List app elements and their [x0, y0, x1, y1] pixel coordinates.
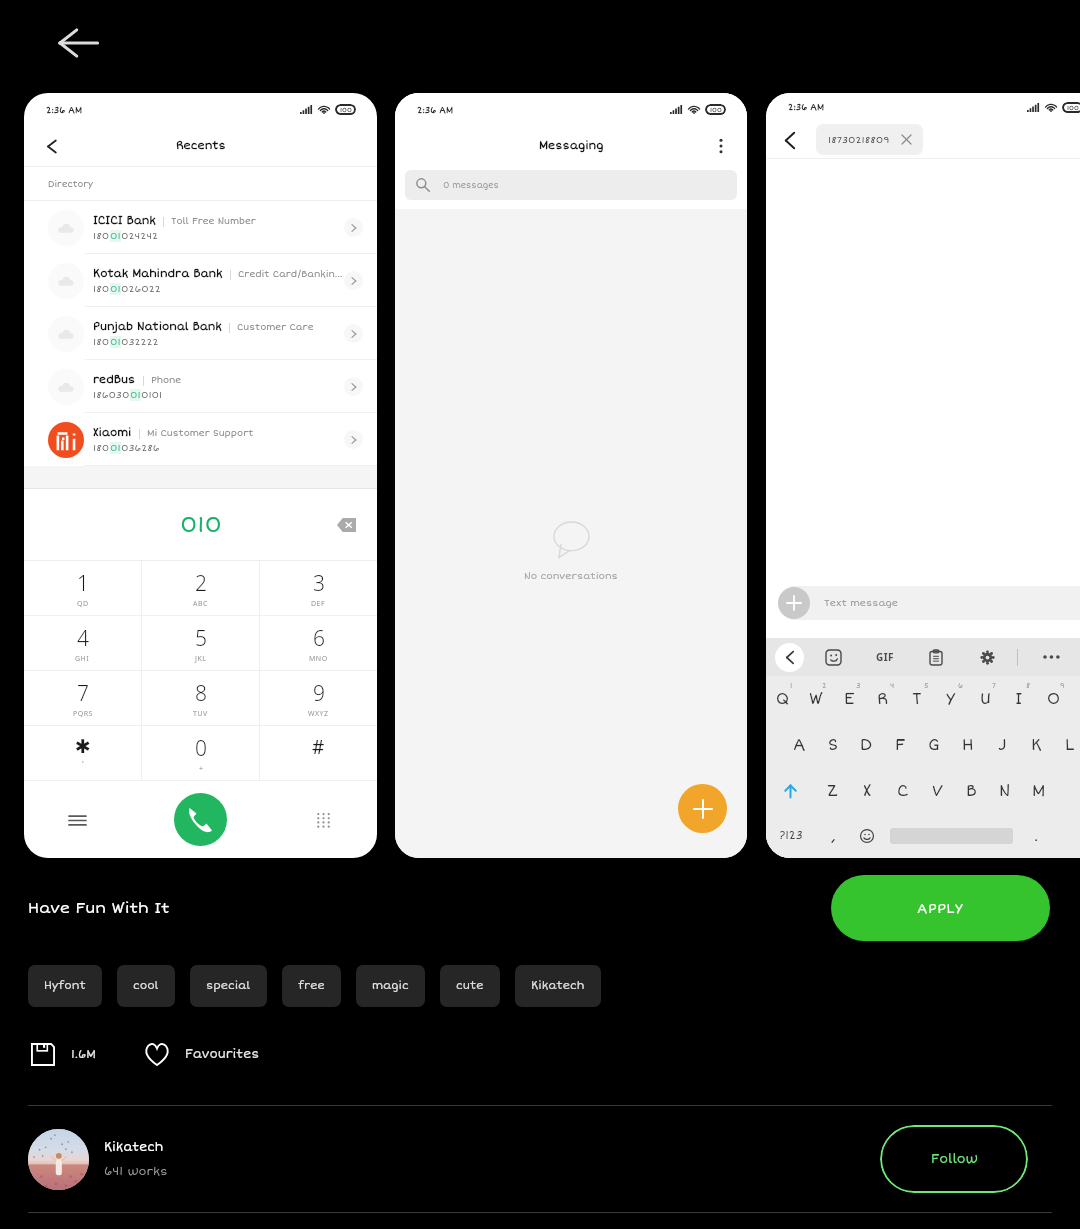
button[interactable]: ✱	[24, 726, 141, 781]
button[interactable]: ICICI Bank	[24, 201, 377, 254]
button[interactable]: New conversation	[678, 784, 727, 833]
staticText: Follow	[931, 1151, 978, 1167]
button[interactable]: special	[190, 965, 267, 1007]
button[interactable]: More	[1037, 644, 1063, 670]
button[interactable]: Settings	[974, 644, 1000, 670]
staticText: Z	[827, 781, 838, 801]
staticText: W	[809, 689, 823, 709]
button[interactable]: 0 messages	[405, 170, 737, 200]
button[interactable]: 6	[260, 616, 377, 671]
button[interactable]: U	[968, 676, 1002, 722]
button[interactable]: T	[900, 676, 934, 722]
button[interactable]: Add attachment	[778, 587, 810, 619]
staticText: Kikatech	[531, 979, 585, 993]
button[interactable]: Y	[934, 676, 968, 722]
button[interactable]: redBus	[24, 360, 377, 413]
button[interactable]: Kikatech	[515, 965, 601, 1007]
button[interactable]: S	[816, 722, 849, 768]
button[interactable]: APPLY	[831, 875, 1050, 941]
button[interactable]: 9	[260, 671, 377, 726]
staticText: 01	[130, 389, 141, 401]
button[interactable]: I	[1002, 676, 1036, 722]
button[interactable]: Xiaomi	[24, 413, 377, 466]
staticText: 01	[110, 442, 121, 454]
staticText: 026022	[121, 283, 161, 295]
button[interactable]: cool	[117, 965, 175, 1007]
staticText: 0	[195, 734, 207, 763]
button[interactable]: GIF	[870, 642, 900, 672]
button[interactable]: Favourites	[141, 1038, 173, 1070]
button[interactable]: M	[1022, 768, 1056, 814]
staticText: 100	[1067, 104, 1079, 112]
button[interactable]: G	[917, 722, 951, 768]
button[interactable]: Q	[766, 676, 799, 722]
button[interactable]: H	[951, 722, 985, 768]
button[interactable]: Shift	[766, 768, 815, 814]
button[interactable]: free	[282, 965, 341, 1007]
button[interactable]: Call	[174, 793, 227, 846]
button[interactable]: Comma	[816, 814, 850, 858]
staticText: 641 works	[104, 1164, 168, 1178]
staticText: cool	[133, 979, 159, 993]
button[interactable]: Back	[32, 126, 72, 166]
button[interactable]: Stickers	[820, 644, 846, 670]
button[interactable]: E	[832, 676, 866, 722]
button[interactable]: B	[954, 768, 988, 814]
button[interactable]: Keypad	[308, 805, 338, 835]
button[interactable]: Hyfont	[28, 965, 102, 1007]
button[interactable]: 2	[142, 561, 259, 616]
button[interactable]: 1	[24, 561, 141, 616]
staticText: 100	[340, 106, 352, 114]
button[interactable]: N	[988, 768, 1022, 814]
button[interactable]: #	[260, 726, 377, 781]
button[interactable]: K	[1019, 722, 1053, 768]
button[interactable]: More options	[705, 130, 737, 162]
button[interactable]: Z	[815, 768, 850, 814]
staticText: 1	[790, 681, 793, 690]
button[interactable]: W	[799, 676, 832, 722]
staticText: ICICI Bank	[93, 214, 156, 227]
button[interactable]: 18730218809	[816, 124, 923, 155]
button[interactable]: 8	[142, 671, 259, 726]
button[interactable]: Menu	[62, 805, 92, 835]
button[interactable]: Follow	[880, 1125, 1028, 1193]
button[interactable]: A	[783, 722, 816, 768]
button[interactable]: V	[920, 768, 954, 814]
staticText: T	[912, 689, 922, 709]
button[interactable]: 4	[24, 616, 141, 671]
button[interactable]: Punjab National Bank	[24, 307, 377, 360]
button[interactable]: Backspace	[331, 510, 361, 540]
button[interactable]: Back	[50, 15, 106, 71]
button[interactable]: J	[985, 722, 1019, 768]
button[interactable]: C	[885, 768, 920, 814]
staticText: 010	[180, 511, 222, 538]
button[interactable]: Period	[1019, 814, 1053, 858]
button[interactable]: Back	[775, 125, 805, 155]
button[interactable]: cute	[440, 965, 500, 1007]
button[interactable]: L	[1053, 722, 1080, 768]
staticText: 5	[924, 681, 929, 690]
button[interactable]: Clipboard	[923, 644, 949, 670]
button[interactable]: O	[1036, 676, 1070, 722]
button[interactable]: D	[849, 722, 883, 768]
button[interactable]: Downloads	[28, 1039, 58, 1069]
button[interactable]: 0	[142, 726, 259, 781]
button[interactable]: Collapse toolbar	[775, 643, 804, 672]
button[interactable]: Kotak Mahindra Bank	[24, 254, 377, 307]
button[interactable]	[778, 586, 1080, 620]
button[interactable]: 7	[24, 671, 141, 726]
button[interactable]: F	[883, 722, 917, 768]
staticText: E	[844, 689, 855, 709]
button[interactable]: Emoji	[850, 814, 884, 858]
button[interactable]: 3	[260, 561, 377, 616]
button[interactable]: R	[866, 676, 900, 722]
button[interactable]: 5	[142, 616, 259, 671]
button[interactable]: X	[850, 768, 885, 814]
button[interactable]: ?123	[766, 814, 816, 858]
staticText: 9	[1060, 681, 1065, 690]
button[interactable]: magic	[356, 965, 425, 1007]
